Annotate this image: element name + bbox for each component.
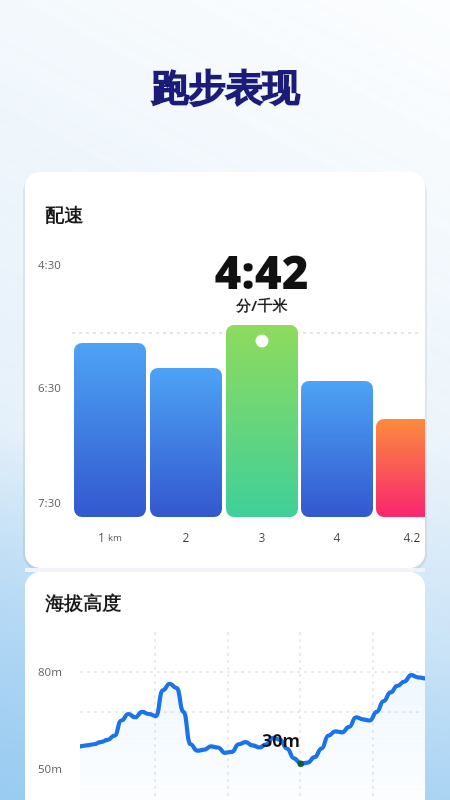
button[interactable]: Running performance screen [0,0,450,800]
